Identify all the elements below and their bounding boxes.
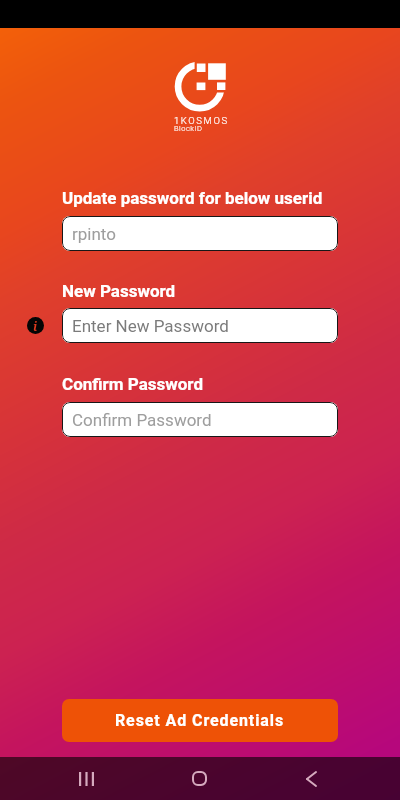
- staticText: BlockID: [174, 124, 203, 133]
- button[interactable]: Back: [283, 757, 340, 800]
- staticText: Enter New Password: [72, 316, 229, 336]
- staticText: Reset Ad Credentials: [115, 711, 285, 730]
- button[interactable]: Password policy info: [27, 317, 44, 334]
- staticText: New Password: [62, 281, 176, 301]
- button[interactable]: Home: [171, 757, 228, 800]
- staticText: Confirm Password: [62, 374, 204, 394]
- staticText: Confirm Password: [72, 410, 212, 430]
- button[interactable]: Confirm Password: [62, 402, 338, 437]
- staticText: i: [33, 318, 38, 334]
- button[interactable]: Recent apps: [58, 757, 115, 800]
- button[interactable]: rpinto: [62, 216, 338, 251]
- staticText: rpinto: [72, 224, 116, 244]
- staticText: Update password for below userid: [62, 188, 323, 208]
- button[interactable]: Reset Ad Credentials: [62, 699, 338, 742]
- button[interactable]: Enter New Password: [62, 308, 338, 343]
- staticText: 1KOSMOS: [174, 115, 229, 126]
